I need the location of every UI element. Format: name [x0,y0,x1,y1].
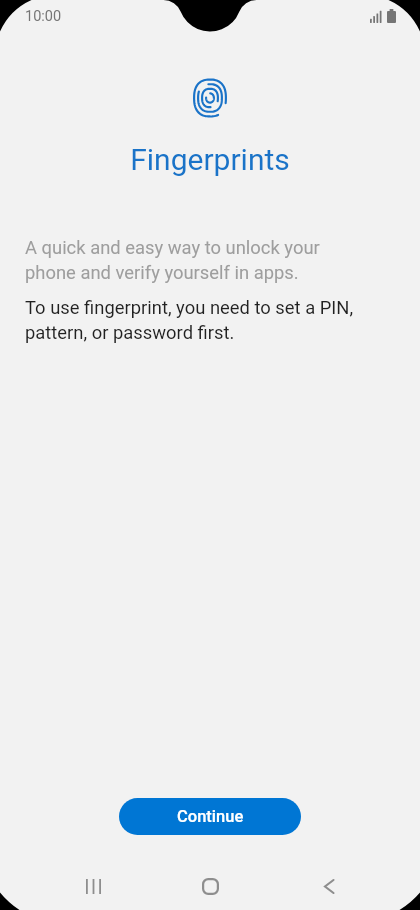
staticText: A quick and easy way to unlock your phon… [25,237,357,284]
staticText: Continue [177,807,244,826]
button[interactable]: Home [188,862,233,910]
staticText: Fingerprints [0,142,420,177]
staticText: 10:00 [25,8,62,25]
button[interactable]: Continue [119,798,301,835]
button[interactable]: Back [306,862,351,910]
staticText: To use fingerprint, you need to set a PI… [25,297,357,344]
button[interactable]: Recents [71,862,116,910]
